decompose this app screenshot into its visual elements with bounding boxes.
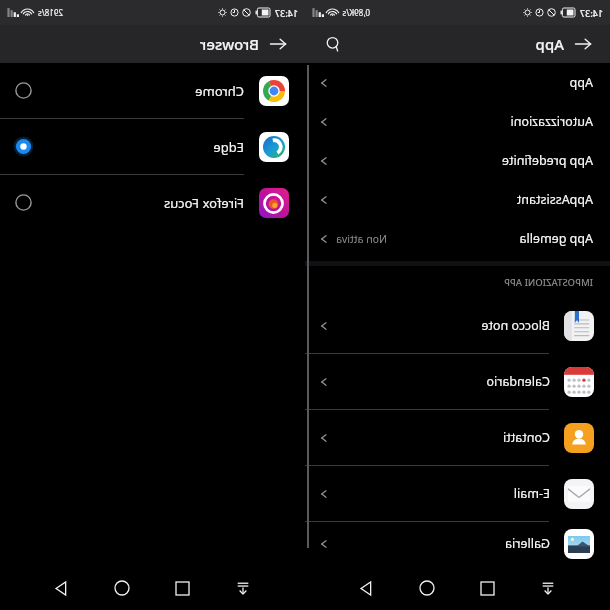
staticText: Edge	[213, 138, 244, 156]
button[interactable]: Hide keyboard	[225, 570, 261, 606]
button[interactable]: Contatti	[305, 410, 610, 465]
staticText: IMPOSTAZIONI APP	[504, 276, 593, 289]
staticText: Firefox Focus	[164, 194, 244, 212]
button[interactable]: Back	[568, 29, 598, 59]
staticText: Chrome	[195, 82, 244, 100]
button[interactable]: App predefinite	[305, 141, 610, 180]
button[interactable]: Calendario	[305, 354, 610, 409]
button[interactable]: Hide keyboard	[530, 570, 566, 606]
staticText: Blocco note	[481, 317, 550, 334]
staticText: Galleria	[504, 535, 550, 552]
button[interactable]: E-mail	[305, 466, 610, 521]
staticText: E-mail	[513, 485, 550, 502]
staticText: 0,89K/s	[342, 7, 370, 18]
button[interactable]: Autorizzazioni	[305, 102, 610, 141]
button[interactable]: Chrome	[0, 63, 305, 118]
staticText: Browser	[199, 34, 259, 54]
staticText: 14:37	[274, 7, 298, 19]
button[interactable]: AppAssistant	[305, 180, 610, 219]
button[interactable]: Home	[409, 570, 445, 606]
button[interactable]: Home	[104, 570, 140, 606]
button[interactable]: App gemella	[305, 219, 610, 258]
staticText: AppAssistant	[516, 191, 593, 208]
button[interactable]: Blocco note	[305, 298, 610, 353]
staticText: App gemella	[519, 230, 593, 247]
staticText: App	[535, 34, 564, 54]
staticText: Non attiva	[336, 232, 387, 246]
staticText: Contatti	[503, 429, 550, 446]
button[interactable]: Firefox Focus	[0, 175, 305, 230]
staticText: App	[569, 74, 593, 91]
staticText: Autorizzazioni	[510, 113, 593, 130]
button[interactable]: Back	[263, 29, 293, 59]
button[interactable]: Back	[349, 570, 385, 606]
button[interactable]: Back	[44, 570, 80, 606]
staticText: Calendario	[486, 373, 550, 390]
button[interactable]: Recents	[470, 570, 506, 606]
button[interactable]: Recents	[165, 570, 201, 606]
staticText: 2918/s	[37, 7, 63, 18]
staticText: 14:37	[579, 7, 603, 19]
button[interactable]: Edge	[0, 119, 305, 174]
staticText: App predefinite	[501, 152, 593, 169]
button[interactable]: App	[305, 63, 610, 102]
button[interactable]: Search	[317, 29, 347, 59]
button[interactable]: Galleria	[305, 522, 610, 565]
